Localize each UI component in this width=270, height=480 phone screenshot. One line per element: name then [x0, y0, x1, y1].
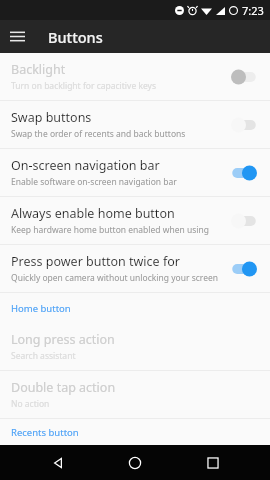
- staticText: Keep hardware home button enabled when u…: [11, 224, 221, 236]
- staticText: Swap buttons: [11, 109, 92, 126]
- staticText: Search assistant: [11, 350, 76, 362]
- button[interactable]: Swap buttons: [0, 101, 270, 148]
- button[interactable]: Backlight: [0, 53, 270, 100]
- button[interactable]: Double tap action: [0, 371, 270, 418]
- staticText: Backlight: [11, 61, 66, 78]
- staticText: Quickly open camera without unlocking yo…: [11, 272, 218, 284]
- staticText: Long press action: [11, 331, 115, 348]
- staticText: Enable software on-screen navigation bar: [11, 176, 177, 188]
- staticText: Recents button: [11, 426, 79, 439]
- button[interactable]: Toggle: [229, 161, 259, 185]
- button[interactable]: Back: [38, 445, 78, 480]
- button[interactable]: Long press action: [0, 323, 270, 370]
- button[interactable]: Toggle: [229, 113, 259, 137]
- button[interactable]: Always enable home button: [0, 197, 270, 244]
- staticText: No action: [11, 398, 50, 410]
- button[interactable]: On-screen navigation bar: [0, 149, 270, 196]
- staticText: Buttons: [48, 27, 103, 47]
- staticText: Swap the order of recents and back butto…: [11, 128, 186, 140]
- button[interactable]: Recent apps: [193, 445, 233, 480]
- staticText: Press power button twice for camera: [11, 253, 221, 270]
- staticText: 7:23: [242, 3, 264, 18]
- staticText: Turn on backlight for capacitive keys: [11, 80, 156, 92]
- staticText: On-screen navigation bar: [11, 157, 160, 174]
- staticText: Always enable home button: [11, 205, 175, 222]
- button[interactable]: Open navigation menu: [0, 20, 34, 53]
- button[interactable]: Toggle: [229, 257, 259, 281]
- button[interactable]: Toggle: [229, 209, 259, 233]
- button[interactable]: Toggle: [229, 65, 259, 89]
- staticText: Home button: [11, 302, 71, 315]
- staticText: Double tap action: [11, 379, 116, 396]
- button[interactable]: Press power button twice for camera: [0, 245, 270, 292]
- button[interactable]: Home: [115, 445, 155, 480]
